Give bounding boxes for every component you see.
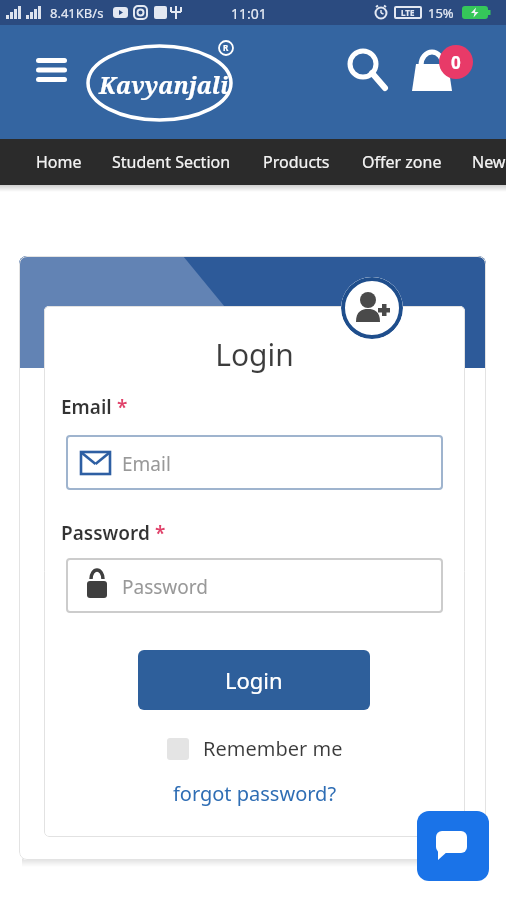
button[interactable] bbox=[30, 52, 74, 90]
staticText: * bbox=[112, 394, 128, 420]
button[interactable]: Login bbox=[138, 650, 370, 710]
staticText: * bbox=[150, 520, 166, 546]
button[interactable]: Student Section bbox=[112, 151, 231, 173]
staticText: R bbox=[223, 42, 229, 53]
staticText: Password bbox=[61, 520, 150, 546]
button[interactable]: 0 bbox=[404, 45, 480, 105]
button[interactable]: Password bbox=[66, 558, 443, 613]
staticText: 8.41KB/s bbox=[50, 4, 104, 22]
staticText: Kavyanjali bbox=[99, 69, 229, 100]
button[interactable]: Home bbox=[36, 151, 82, 173]
staticText: Email bbox=[122, 451, 171, 477]
staticText: LTE bbox=[401, 7, 415, 18]
staticText: Remember me bbox=[203, 735, 343, 762]
button[interactable] bbox=[417, 811, 489, 881]
staticText: 0 bbox=[451, 51, 461, 74]
button[interactable]: Email bbox=[66, 435, 443, 490]
staticText: 11:01 bbox=[231, 4, 267, 23]
button[interactable]: R bbox=[86, 42, 236, 124]
staticText: Login bbox=[44, 334, 465, 375]
button[interactable]: Remember me bbox=[44, 735, 465, 762]
button[interactable] bbox=[340, 41, 396, 101]
button[interactable]: New bbox=[472, 151, 506, 173]
staticText: Login bbox=[225, 665, 283, 695]
button[interactable]: Offer zone bbox=[362, 151, 442, 173]
staticText: 15% bbox=[428, 4, 454, 22]
button[interactable]: forgot password? bbox=[44, 780, 465, 807]
staticText: Password bbox=[122, 574, 208, 600]
staticText: Email bbox=[61, 394, 112, 420]
button[interactable]: Products bbox=[263, 151, 330, 173]
